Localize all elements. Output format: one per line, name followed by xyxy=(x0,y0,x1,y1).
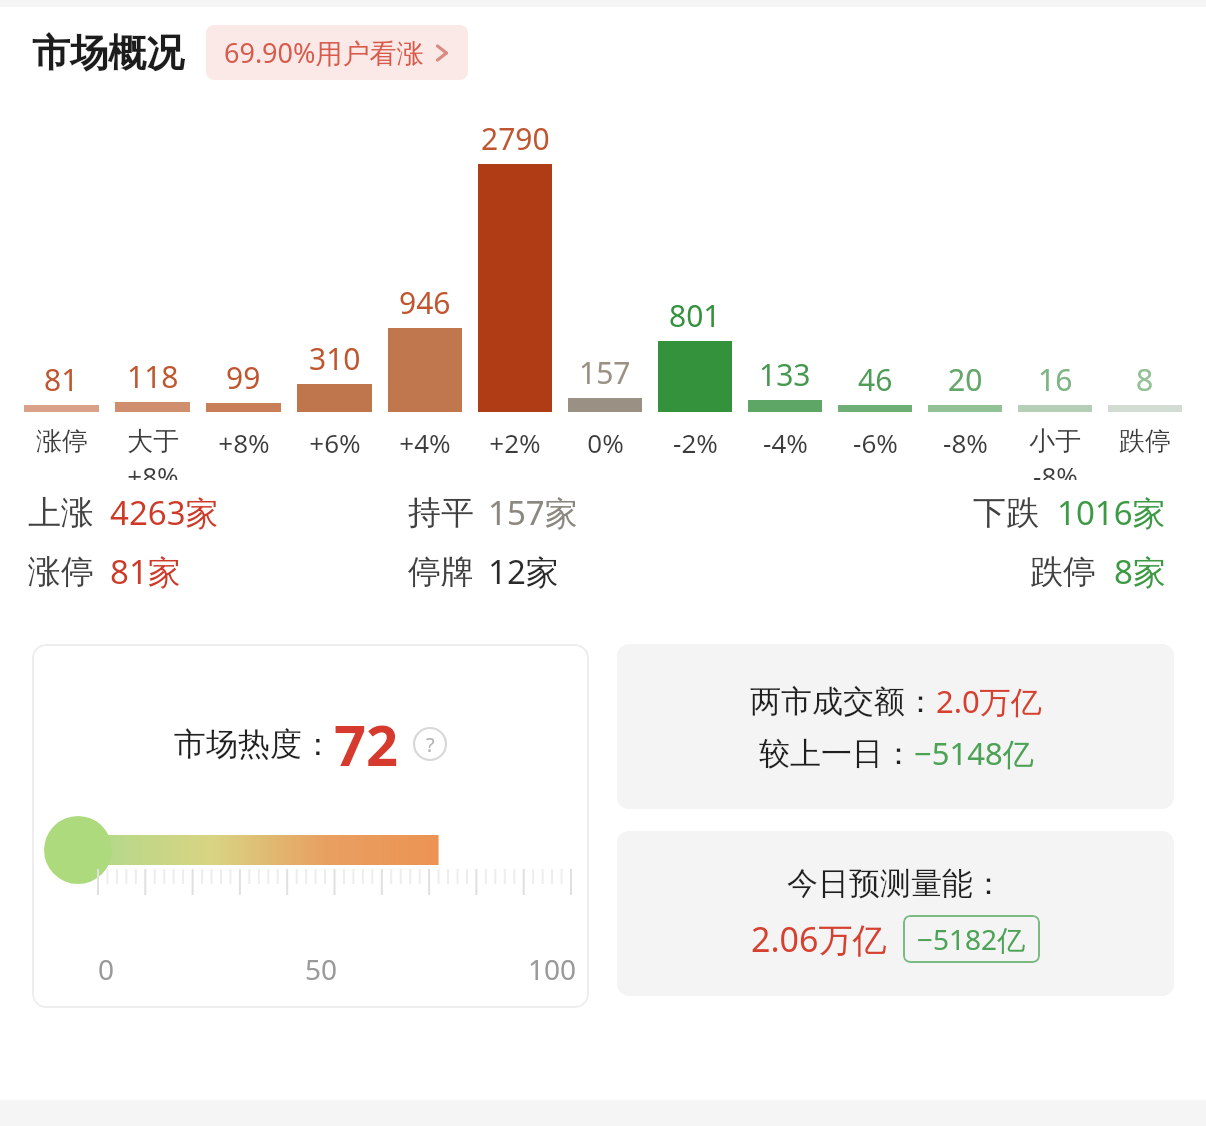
staticText: 0 xyxy=(98,950,115,988)
staticText: 较上一日： xyxy=(759,734,914,773)
staticText: 1016家 xyxy=(1057,490,1166,535)
staticText: 持平 xyxy=(408,492,474,534)
staticText: 2.0万亿 xyxy=(936,680,1042,722)
button[interactable]: 69.90%用户看涨 xyxy=(206,25,468,80)
staticText: 801 xyxy=(669,295,721,336)
staticText: +2% xyxy=(489,425,541,460)
staticText: 81家 xyxy=(110,549,181,594)
staticText: -4% xyxy=(763,425,808,460)
staticText: 两市成交额： xyxy=(750,682,936,721)
staticText: +4% xyxy=(399,425,451,460)
staticText: -8% xyxy=(1033,458,1078,480)
staticText: 2.06万亿 xyxy=(751,916,887,962)
staticText: 72 xyxy=(334,706,399,782)
staticText: 100 xyxy=(528,950,577,988)
staticText: 46 xyxy=(858,359,893,400)
staticText: 跌停 xyxy=(1030,551,1096,593)
staticText: ? xyxy=(426,731,435,758)
staticText: −5182亿 xyxy=(917,920,1026,958)
staticText: 12家 xyxy=(488,549,559,594)
staticText: 跌停 xyxy=(1119,425,1171,458)
staticText: 下跌 xyxy=(973,492,1039,534)
staticText: 99 xyxy=(226,357,261,398)
staticText: 20 xyxy=(948,359,983,400)
staticText: 2790 xyxy=(481,118,550,159)
staticText: 小于 xyxy=(1029,425,1081,458)
staticText: +6% xyxy=(309,425,361,460)
staticText: 4263家 xyxy=(110,490,219,535)
button[interactable]: 市场热度说明 xyxy=(413,727,447,761)
staticText: 157 xyxy=(579,352,631,393)
staticText: 69.90%用户看涨 xyxy=(224,34,424,71)
button[interactable]: 两市成交额： xyxy=(617,644,1174,809)
staticText: 涨停 xyxy=(36,425,88,458)
staticText: 今日预测量能： xyxy=(787,864,1004,903)
staticText: 涨停 xyxy=(28,551,94,593)
staticText: 停牌 xyxy=(408,551,474,593)
button[interactable]: 今日预测量能： xyxy=(617,831,1174,996)
staticText: 8家 xyxy=(1114,549,1166,594)
staticText: 8 xyxy=(1136,359,1154,400)
button[interactable]: 市场热度： xyxy=(32,644,589,1008)
staticText: +8% xyxy=(218,425,270,460)
staticText: −5148亿 xyxy=(914,732,1034,774)
staticText: -8% xyxy=(943,425,988,460)
staticText: 市场热度： xyxy=(174,724,334,764)
staticText: 市场概况 xyxy=(32,29,184,77)
staticText: 81 xyxy=(44,359,79,400)
staticText: 大于 xyxy=(127,425,179,458)
staticText: 118 xyxy=(127,356,179,397)
staticText: 133 xyxy=(759,354,811,395)
staticText: 310 xyxy=(309,338,361,379)
staticText: 157家 xyxy=(488,490,578,535)
staticText: 50 xyxy=(305,950,338,988)
staticText: -6% xyxy=(853,425,898,460)
staticText: 16 xyxy=(1038,359,1073,400)
staticText: -2% xyxy=(673,425,718,460)
staticText: +8% xyxy=(127,458,179,480)
staticText: 946 xyxy=(399,282,451,323)
staticText: 0% xyxy=(587,425,624,460)
staticText: 上涨 xyxy=(28,492,94,534)
